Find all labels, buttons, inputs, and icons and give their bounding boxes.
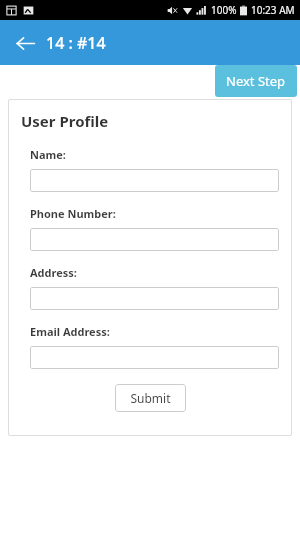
button[interactable]: Phone Number:: [30, 228, 279, 251]
staticText: Submit: [130, 390, 171, 406]
button[interactable]: Submit: [115, 384, 186, 412]
staticText: 100%: [211, 3, 237, 17]
button[interactable]: Next Step: [215, 65, 297, 97]
staticText: Name:: [30, 147, 66, 162]
button[interactable]: Address:: [30, 287, 279, 310]
button[interactable]: Email Address:: [30, 346, 279, 369]
staticText: Address:: [30, 265, 77, 280]
staticText: 10:23 AM: [251, 3, 295, 17]
staticText: 14 : #14: [46, 32, 106, 54]
button[interactable]: Back: [8, 26, 42, 60]
button[interactable]: Name:: [30, 169, 279, 192]
staticText: User Profile: [21, 111, 109, 131]
staticText: Next Step: [226, 72, 286, 90]
staticText: Email Address:: [30, 324, 110, 339]
staticText: Phone Number:: [30, 206, 116, 221]
